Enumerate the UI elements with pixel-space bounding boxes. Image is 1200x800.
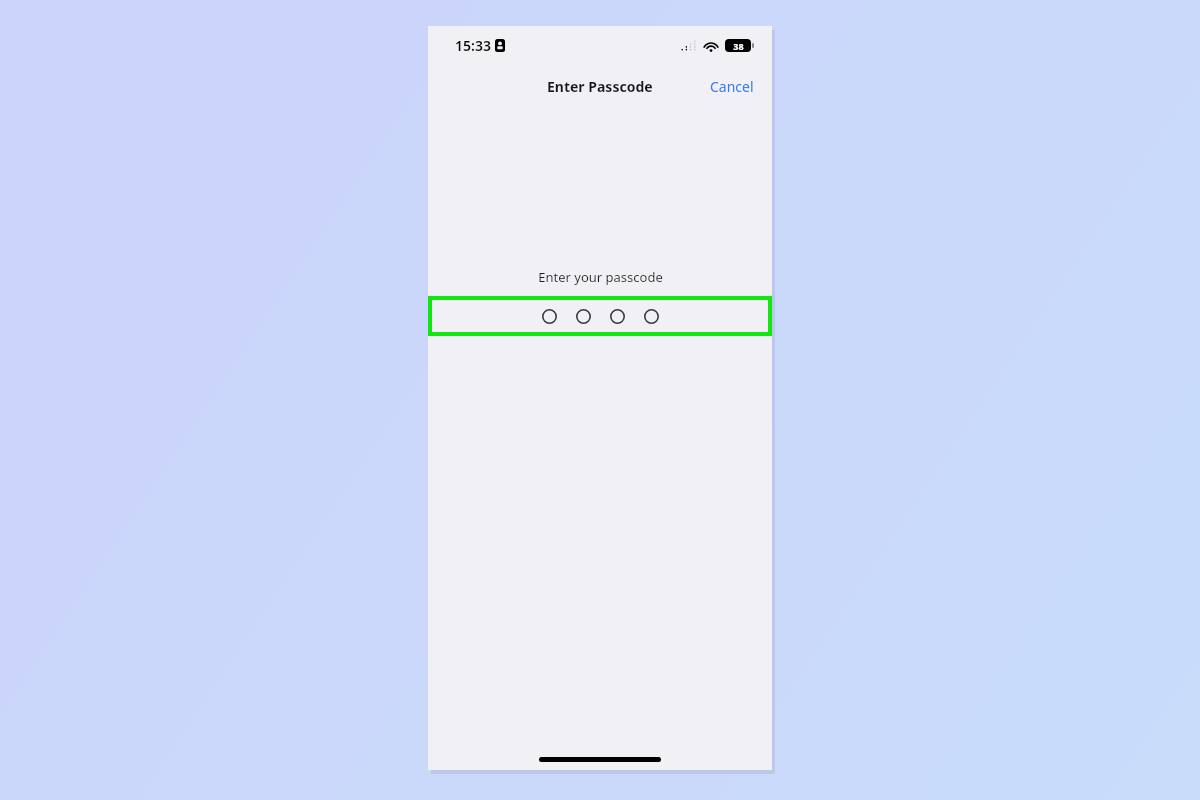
staticText: Enter Passcode bbox=[547, 77, 653, 96]
staticText: 38 bbox=[733, 40, 744, 52]
staticText: Cancel bbox=[710, 77, 754, 96]
button[interactable]: Cancel bbox=[692, 71, 772, 102]
staticText: Enter your passcode bbox=[538, 268, 663, 286]
staticText: 15:33 bbox=[455, 36, 491, 55]
button[interactable]: Passcode entry field bbox=[428, 296, 772, 336]
